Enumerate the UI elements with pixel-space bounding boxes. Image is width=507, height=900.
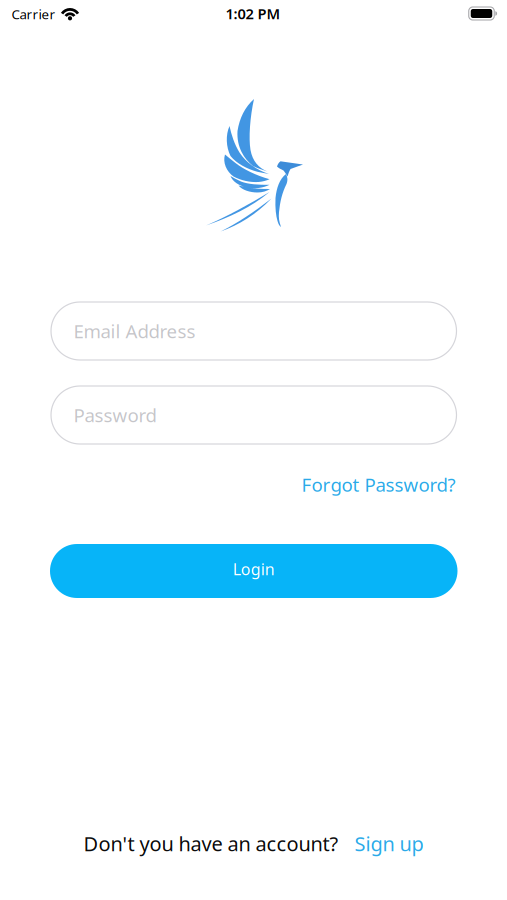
staticText: Don't you have an account?: [83, 830, 338, 857]
staticText: Carrier: [11, 5, 55, 23]
button[interactable]: Login: [50, 544, 457, 598]
textField[interactable]: Email Address: [51, 302, 456, 360]
staticText: Password: [73, 403, 156, 427]
textField[interactable]: Password: [51, 386, 456, 444]
staticText: 1:02 PM: [225, 4, 280, 23]
staticText: Forgot Password?: [301, 472, 455, 497]
staticText: Email Address: [73, 319, 195, 343]
staticText: Login: [233, 558, 275, 580]
button[interactable]: Sign up: [354, 830, 423, 857]
button[interactable]: Forgot Password?: [301, 472, 455, 497]
staticText: Sign up: [354, 830, 423, 857]
